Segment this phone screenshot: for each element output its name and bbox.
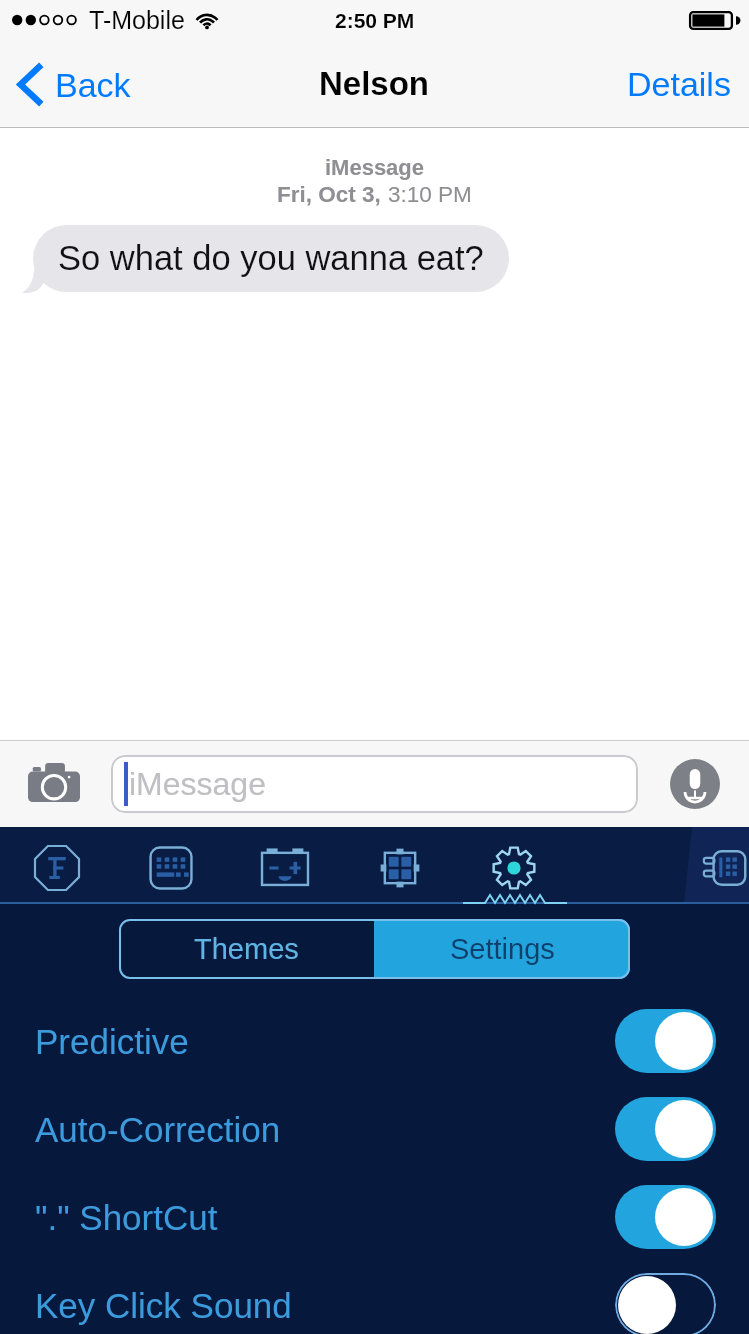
- button[interactable]: Font list: [29, 840, 85, 896]
- button[interactable]: Key Click Sound switch: [615, 1273, 749, 1334]
- staticText: "." ShortCut: [35, 1198, 218, 1237]
- staticText: Predictive: [35, 1022, 189, 1061]
- staticText: T-Mobile: [89, 6, 185, 34]
- button[interactable]: Keyboard: [143, 840, 199, 896]
- button[interactable]: Predictive switch: [615, 1009, 749, 1073]
- button[interactable]: Layouts: [372, 840, 428, 896]
- staticText: Fri, Oct 3,: [277, 182, 388, 207]
- button[interactable]: iMessage: [111, 755, 638, 813]
- staticText: Themes: [194, 933, 299, 965]
- staticText: 2:50 PM: [335, 9, 415, 32]
- button[interactable]: "." ShortCut: [0, 1173, 749, 1261]
- staticText: iMessage: [0, 155, 749, 180]
- button[interactable]: Themes: [119, 919, 374, 979]
- button[interactable]: Key Click Sound: [0, 1261, 749, 1334]
- staticText: Auto-Correction: [35, 1110, 281, 1149]
- staticText: Key Click Sound: [35, 1286, 292, 1325]
- button[interactable]: Microphone: [670, 759, 720, 809]
- staticText: Nelson: [319, 65, 430, 102]
- button[interactable]: Auto-Correction: [0, 1085, 749, 1173]
- staticText: iMessage: [129, 766, 266, 802]
- button[interactable]: Camera: [28, 763, 80, 802]
- button[interactable]: Predictive: [0, 997, 749, 1085]
- button[interactable]: More keyboards: [697, 840, 749, 896]
- staticText: Back: [55, 66, 131, 104]
- button[interactable]: Settings: [486, 840, 542, 896]
- button[interactable]: Emoji: [257, 840, 313, 896]
- button[interactable]: Settings: [374, 919, 630, 979]
- staticText: 3:10 PM: [388, 182, 472, 207]
- button[interactable]: Back: [0, 63, 141, 106]
- staticText: So what do you wanna eat?: [58, 239, 484, 278]
- staticText: Settings: [450, 933, 555, 965]
- button[interactable]: Auto-Correction switch: [615, 1097, 749, 1161]
- button[interactable]: "." ShortCut switch: [615, 1185, 749, 1249]
- button[interactable]: So what do you wanna eat?: [33, 225, 509, 292]
- button[interactable]: Details: [609, 55, 749, 113]
- staticText: Details: [627, 65, 731, 103]
